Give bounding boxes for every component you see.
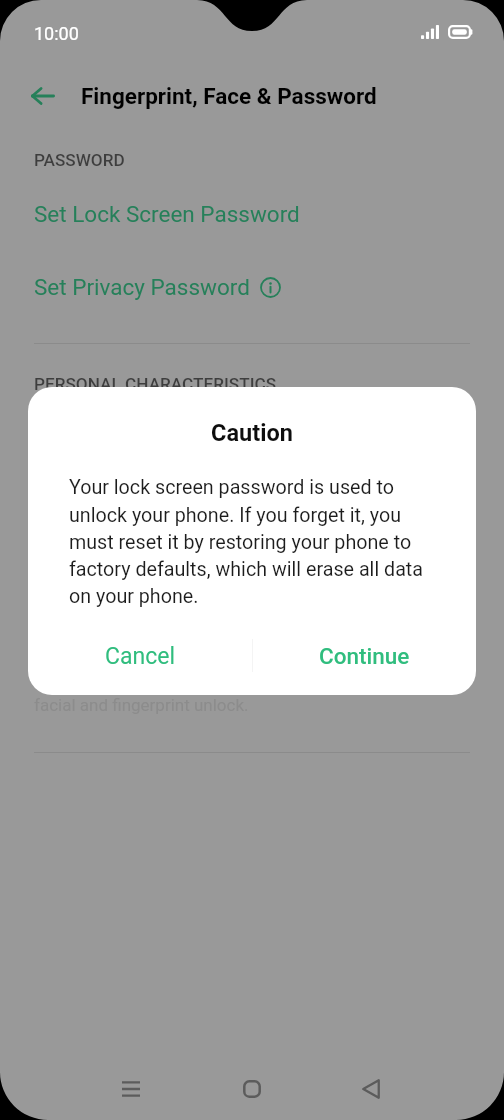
button[interactable]: Set Privacy Password (0, 268, 504, 306)
staticText: facial and fingerprint unlock. (34, 695, 249, 715)
staticText: PERSONAL CHARACTERISTICS (34, 374, 277, 394)
button[interactable]: Set Lock Screen Password (0, 196, 504, 234)
button[interactable]: Continue (252, 626, 476, 686)
button[interactable]: Back (13, 66, 73, 126)
staticText: Your lock screen password is used to unl… (69, 476, 434, 608)
button[interactable]: Recent apps (101, 1059, 161, 1119)
staticText: 10:00 (34, 23, 79, 44)
staticText: Caution (28, 419, 476, 447)
button[interactable]: Back (341, 1059, 401, 1119)
staticText: Set Lock Screen Password (34, 201, 300, 227)
staticText: Set Privacy Password (34, 274, 250, 300)
staticText: Fingerprint, Face & Password (81, 83, 377, 109)
button[interactable]: Home (222, 1059, 282, 1119)
staticText: PASSWORD (34, 150, 125, 170)
staticText: Cancel (105, 643, 176, 670)
staticText: Continue (319, 643, 410, 669)
button[interactable]: Cancel (28, 626, 252, 686)
